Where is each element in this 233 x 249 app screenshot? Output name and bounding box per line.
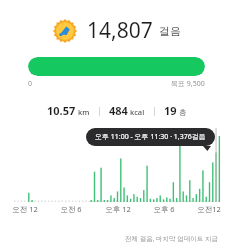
staticText: 오전 12 <box>12 204 38 214</box>
staticText: km <box>78 107 90 117</box>
staticText: 목표 9,500 <box>171 79 205 89</box>
staticText: 오후 6 <box>153 204 175 214</box>
staticText: 19 <box>164 103 177 118</box>
staticText: 오후 11:00 - 오후 11:30 · 1,376걸음 <box>95 132 206 142</box>
staticText: 484 <box>109 103 128 118</box>
staticText: 10.57 <box>47 103 76 118</box>
other: Step badge <box>53 19 77 43</box>
button[interactable]: 10.57 <box>0 103 233 118</box>
button[interactable] <box>28 57 205 76</box>
staticText: 층 <box>179 108 187 117</box>
staticText: 오전 6 <box>60 204 82 214</box>
staticText: kcal <box>130 107 145 117</box>
staticText: 걸음 <box>159 24 181 38</box>
staticText: 14,807 <box>87 16 153 45</box>
staticText: 전체 걸음, 마지막 업데이트 지금 <box>125 234 219 243</box>
staticText: 0 <box>28 79 33 89</box>
staticText: 오후 12 <box>105 204 131 214</box>
staticText: 오전12 <box>197 204 221 214</box>
button[interactable]: Step badge <box>0 16 233 45</box>
button[interactable] <box>0 128 233 204</box>
button[interactable]: 오후 11:00 - 오후 11:30 · 1,376걸음 <box>86 128 215 146</box>
